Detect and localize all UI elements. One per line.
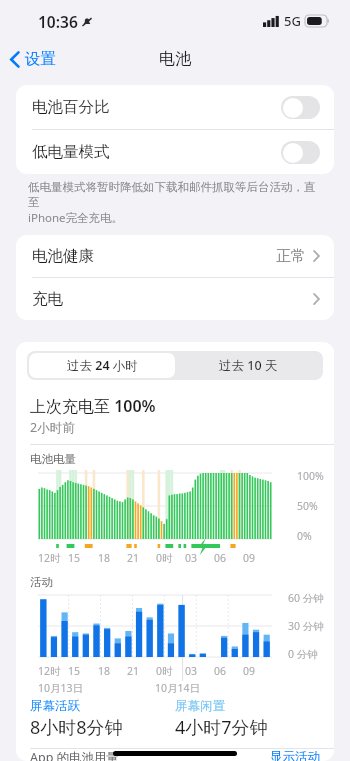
staticText: 06 xyxy=(214,551,227,565)
button[interactable]: 充电 xyxy=(16,278,334,320)
staticText: 03 xyxy=(185,551,198,565)
staticText: 电池 xyxy=(159,49,191,69)
staticText: 12时 xyxy=(38,551,61,565)
staticText: 21 xyxy=(127,551,140,565)
button[interactable]: 过去 10 天 xyxy=(175,353,321,378)
staticText: 4小时7分钟 xyxy=(175,715,268,740)
staticText: 设置 xyxy=(25,49,56,69)
staticText: 60 分钟 xyxy=(288,591,324,605)
button[interactable]: 电池健康 xyxy=(16,235,334,277)
staticText: 电池电量 xyxy=(30,452,76,466)
staticText: 0时 xyxy=(156,664,173,678)
staticText: 电池百分比 xyxy=(32,97,110,117)
staticText: 15 xyxy=(68,551,81,565)
staticText: 18 xyxy=(98,551,111,565)
staticText: 8小时8分钟 xyxy=(30,715,123,740)
staticText: 显示活动 xyxy=(270,749,320,761)
staticText: 正常 xyxy=(276,247,306,266)
staticText: 15 xyxy=(68,664,81,678)
staticText: 5G xyxy=(284,12,301,30)
staticText: 0% xyxy=(297,529,312,543)
staticText: 低电量模式将暂时降低如下载和邮件抓取等后台活动，直至 iPhone完全充电。 xyxy=(28,180,326,225)
staticText: App 的电池用量 xyxy=(30,749,120,761)
staticText: 10:36 xyxy=(38,11,78,32)
button[interactable]: 电池百分比 xyxy=(16,85,334,129)
staticText: 18 xyxy=(98,664,111,678)
staticText: 03 xyxy=(185,664,198,678)
staticText: 2小时前 xyxy=(30,419,75,436)
staticText: 10月14日 xyxy=(155,681,201,695)
staticText: 12时 xyxy=(38,664,61,678)
staticText: 100% xyxy=(297,469,324,483)
staticText: 活动 xyxy=(30,575,53,589)
staticText: 09 xyxy=(243,551,256,565)
staticText: 充电 xyxy=(32,289,63,309)
staticText: 09 xyxy=(243,664,256,678)
button[interactable]: 显示活动 xyxy=(270,749,320,761)
staticText: 10月13日 xyxy=(38,681,84,695)
staticText: 过去 24 小时 xyxy=(67,357,138,374)
staticText: 0时 xyxy=(156,551,173,565)
staticText: 过去 10 天 xyxy=(219,357,278,374)
staticText: 50% xyxy=(297,499,318,513)
button[interactable]: 低电量模式 xyxy=(16,130,334,174)
staticText: 屏幕活跃 xyxy=(30,698,80,714)
staticText: 屏幕闲置 xyxy=(175,698,225,714)
staticText: 21 xyxy=(127,664,140,678)
staticText: 电池健康 xyxy=(32,246,94,266)
button[interactable]: 设置 xyxy=(0,45,64,73)
button[interactable]: 过去 24 小时 xyxy=(29,353,175,378)
staticText: 0 分钟 xyxy=(288,647,318,661)
staticText: 低电量模式 xyxy=(32,142,110,162)
staticText: 上次充电至 100% xyxy=(30,395,156,417)
staticText: 06 xyxy=(214,664,227,678)
staticText: 30 分钟 xyxy=(288,619,324,633)
